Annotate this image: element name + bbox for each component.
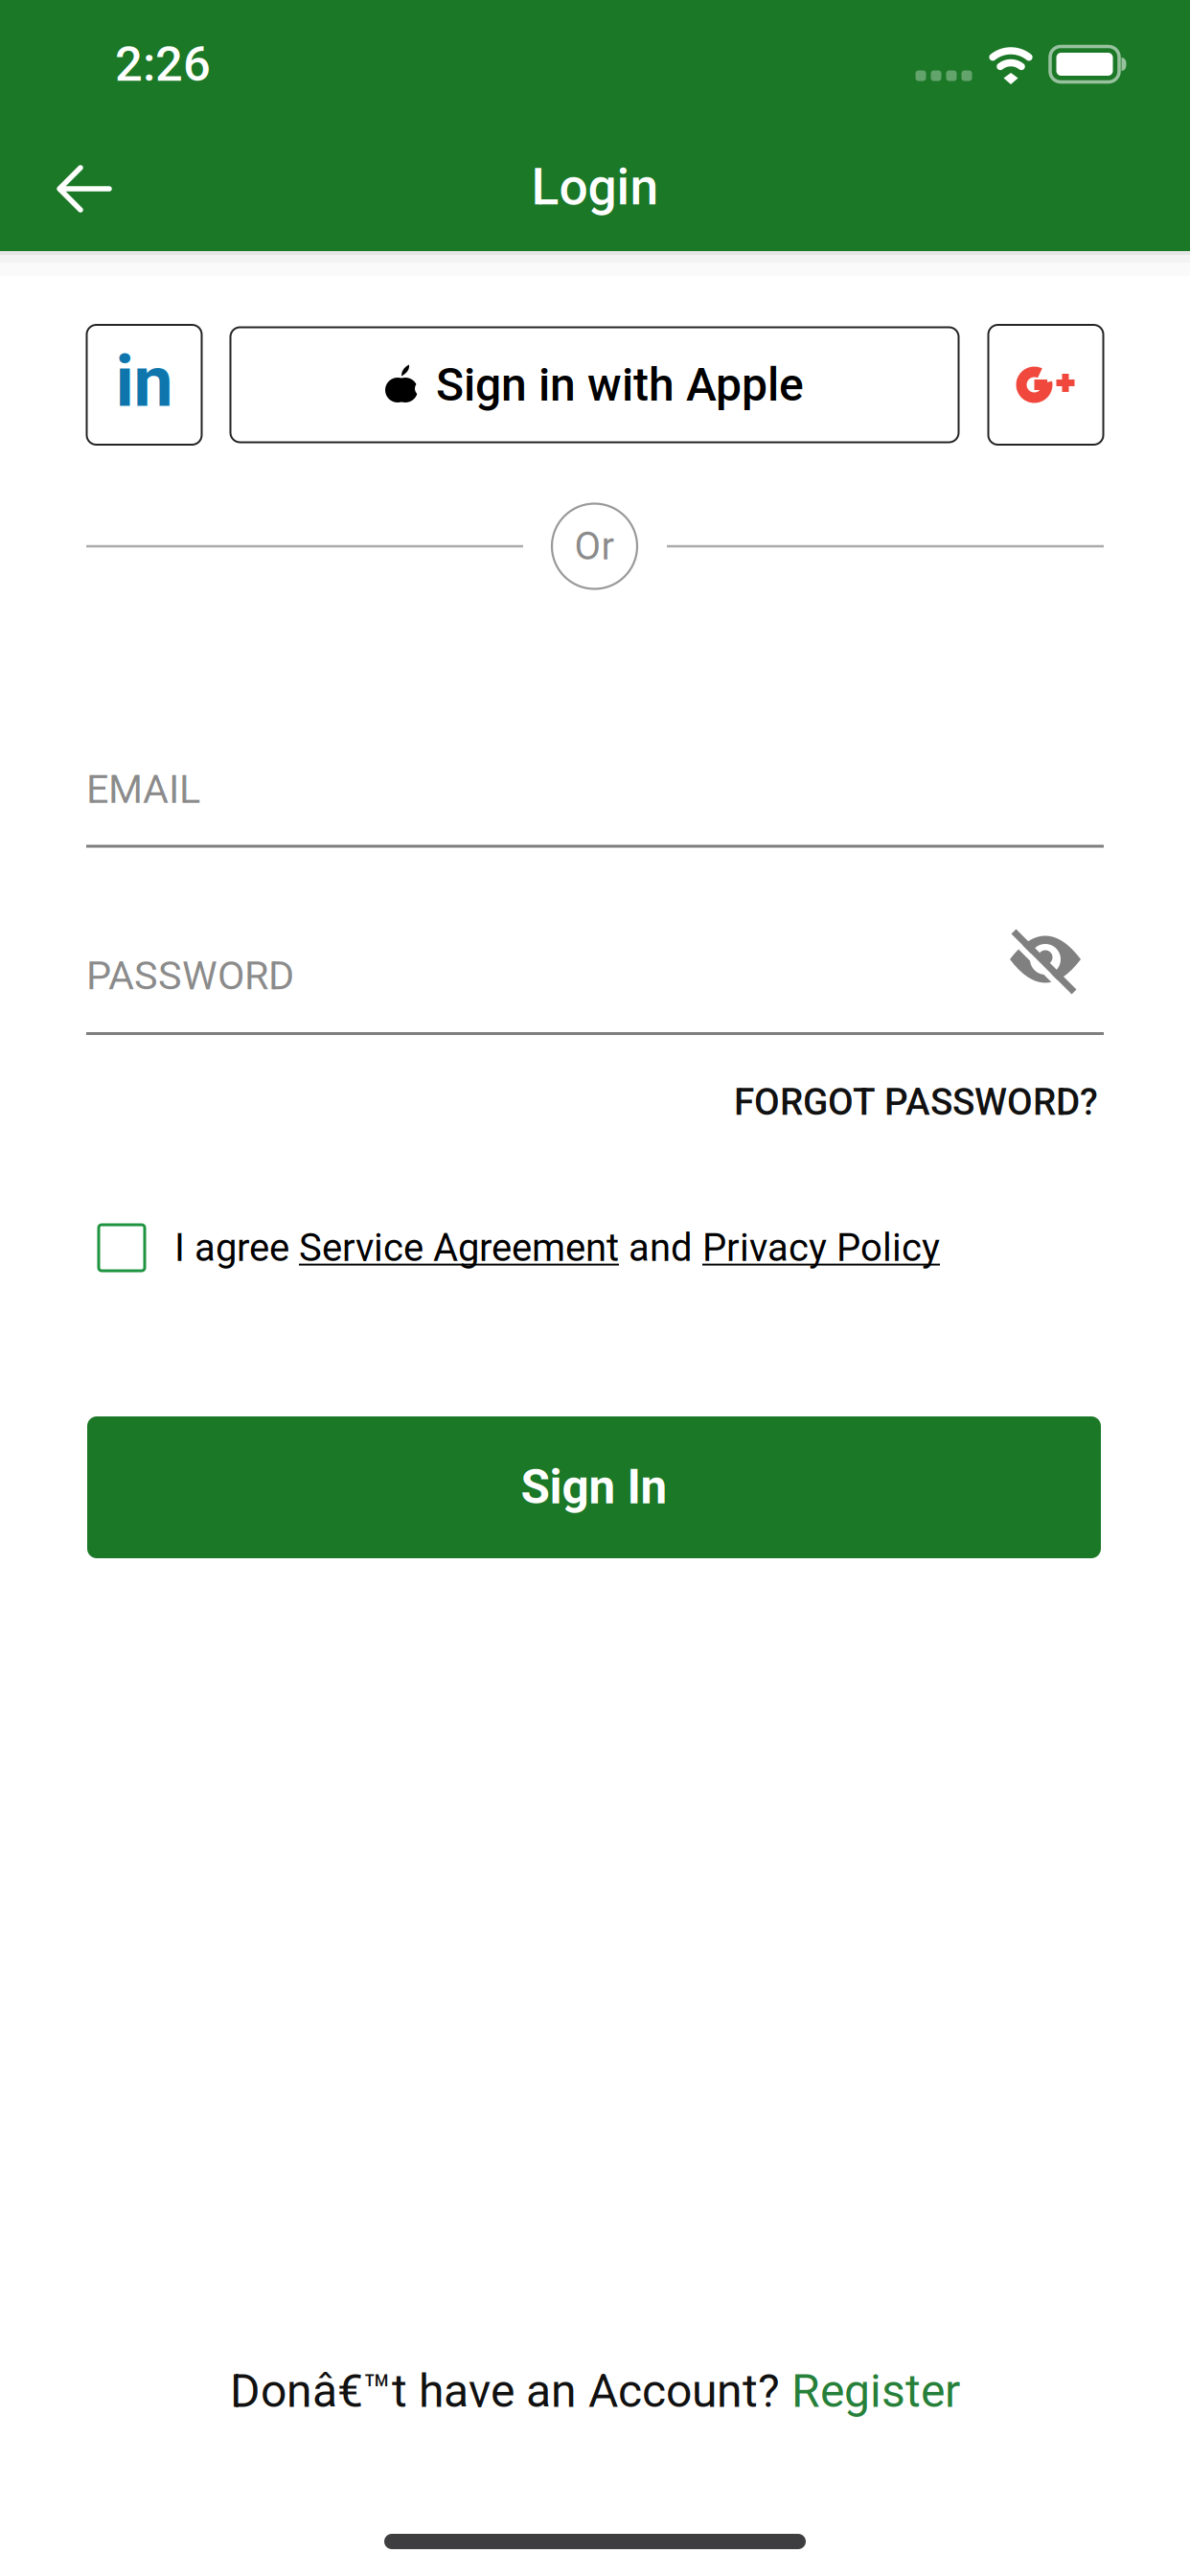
staticText: Register <box>791 2364 960 2418</box>
button[interactable]: Sign in with Apple <box>230 327 959 442</box>
button[interactable]: EMAIL <box>86 766 1104 848</box>
button[interactable]: Register <box>791 2364 960 2418</box>
staticText: 2:26 <box>115 36 211 93</box>
button[interactable]: Service Agreement <box>299 1225 619 1270</box>
staticText: I agree <box>174 1225 299 1270</box>
staticText: Sign in with Apple <box>436 358 804 412</box>
staticText: EMAIL <box>86 766 200 813</box>
staticText: Privacy Policy <box>702 1225 940 1270</box>
button[interactable]: Show password <box>1009 931 1082 997</box>
button[interactable]: Sign In <box>87 1416 1101 1558</box>
staticText: in <box>115 341 173 423</box>
button[interactable]: Sign in with Google <box>988 325 1103 445</box>
staticText: PASSWORD <box>86 953 294 999</box>
button[interactable]: Back <box>57 165 112 213</box>
staticText: Service Agreement <box>299 1225 619 1270</box>
staticText: and <box>619 1225 702 1270</box>
staticText: Login <box>531 157 659 217</box>
button[interactable]: I agree <box>99 1225 145 1271</box>
staticText: Sign In <box>521 1460 667 1515</box>
staticText: FORGOT PASSWORD? <box>734 1080 1098 1124</box>
button[interactable]: Sign in with LinkedIn <box>87 325 202 445</box>
staticText: Donâ€™t have an Account? <box>230 2364 791 2418</box>
button[interactable]: Privacy Policy <box>702 1225 940 1270</box>
button[interactable]: FORGOT PASSWORD? <box>734 1080 1098 1124</box>
button[interactable]: PASSWORD <box>86 953 1104 1035</box>
staticText: Or <box>574 524 615 569</box>
